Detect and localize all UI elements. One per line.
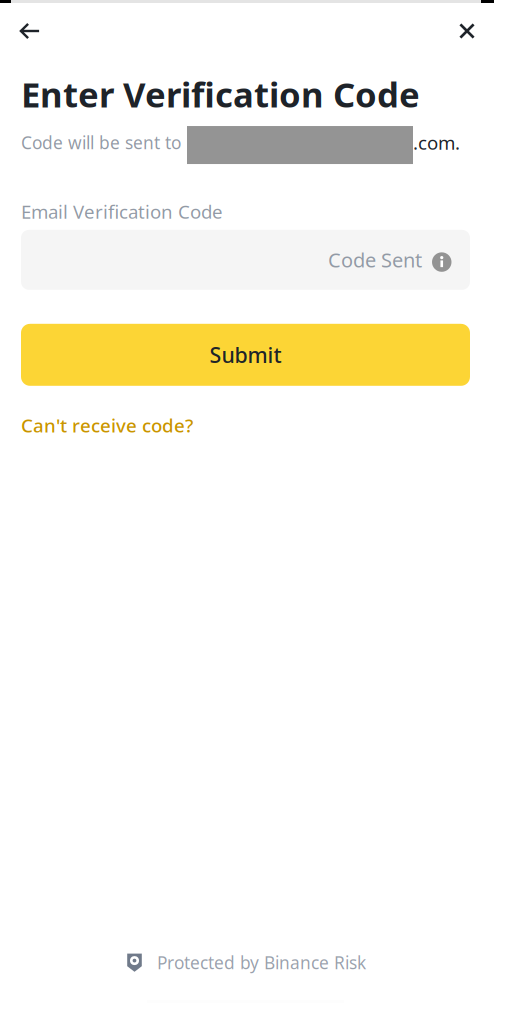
staticText: Enter Verification Code bbox=[21, 71, 420, 117]
staticText: Code will be sent to bbox=[21, 131, 181, 154]
staticText: Code Sent bbox=[328, 246, 422, 273]
button[interactable]: Can't receive code? bbox=[21, 413, 193, 438]
staticText: Email Verification Code bbox=[21, 199, 223, 224]
staticText: Can't receive code? bbox=[21, 413, 193, 438]
staticText: Submit bbox=[209, 341, 281, 369]
button[interactable]: Back bbox=[10, 9, 50, 53]
button[interactable]: Close bbox=[447, 9, 487, 53]
staticText: .com. bbox=[413, 130, 460, 155]
button[interactable]: Submit bbox=[21, 324, 470, 386]
staticText: Protected by Binance Risk bbox=[157, 951, 366, 974]
